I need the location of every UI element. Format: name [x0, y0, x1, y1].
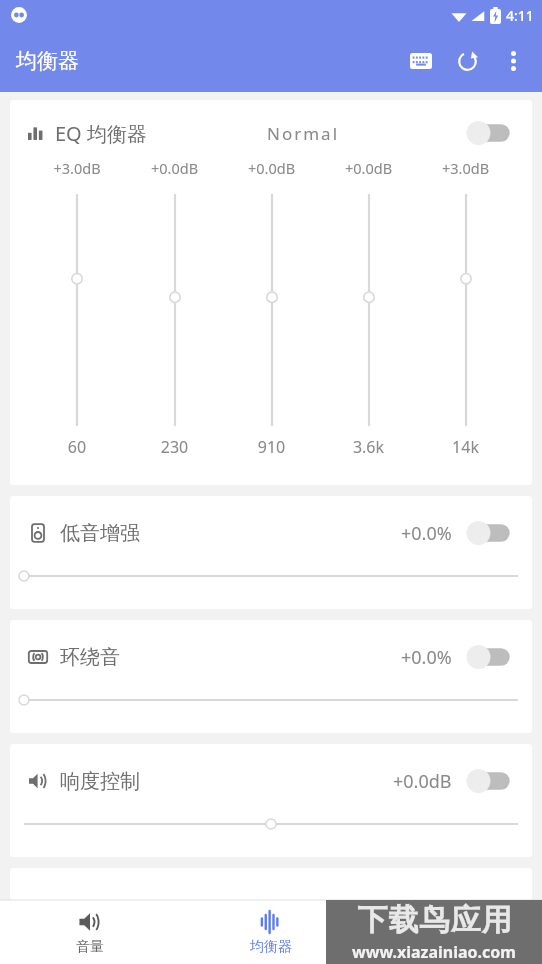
staticText: 60 — [28, 436, 126, 458]
staticText: Normal — [267, 122, 340, 145]
staticText: 14k — [417, 436, 514, 458]
staticText: 下载鸟应用 — [357, 901, 512, 939]
button[interactable]: More options — [490, 38, 536, 84]
staticText: 910 — [223, 436, 320, 458]
staticText: 低音增强 — [60, 521, 140, 546]
staticText: +3.0dB — [28, 158, 126, 178]
button[interactable]: Toggle — [466, 642, 514, 672]
staticText: 响度控制 — [60, 769, 140, 794]
staticText: +0.0dB — [320, 158, 417, 178]
staticText: 均衡器 — [16, 48, 79, 74]
staticText: +0.0dB — [126, 158, 223, 178]
button[interactable]: Keyboard — [398, 38, 444, 84]
staticText: 音量 — [76, 938, 104, 956]
button[interactable]: Refresh — [444, 38, 490, 84]
staticText: 4:11 — [506, 6, 534, 25]
button[interactable]: 均衡器 — [180, 900, 361, 964]
staticText: +3.0dB — [417, 158, 514, 178]
staticText: +0.0dB — [223, 158, 320, 178]
button[interactable]: 环绕音 — [10, 620, 532, 733]
button[interactable]: 低音增强 — [10, 496, 532, 609]
staticText: www.xiazainiao.com — [352, 941, 516, 963]
staticText: +0.0% — [401, 521, 452, 546]
staticText: 环绕音 — [60, 645, 120, 670]
button[interactable]: Toggle — [466, 118, 514, 148]
staticText: 均衡器 — [250, 938, 292, 956]
button[interactable]: EQ 均衡器 — [10, 100, 532, 485]
button[interactable]: Toggle — [466, 518, 514, 548]
staticText: 230 — [126, 436, 223, 458]
staticText: EQ 均衡器 — [55, 120, 147, 147]
button[interactable]: 响度控制 — [10, 744, 532, 857]
button[interactable]: Toggle — [466, 766, 514, 796]
staticText: +0.0dB — [393, 769, 452, 794]
staticText: 3.6k — [320, 436, 417, 458]
button[interactable]: 音量 — [0, 900, 180, 964]
staticText: +0.0% — [401, 645, 452, 670]
